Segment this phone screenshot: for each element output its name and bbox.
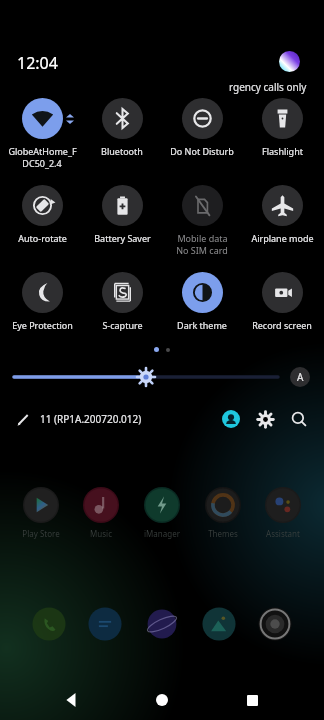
staticText: Assistant	[266, 528, 300, 539]
button[interactable]: Music	[73, 487, 129, 539]
staticText: iManager	[144, 528, 180, 539]
button[interactable]: Back	[54, 682, 90, 718]
button[interactable]: Do Not Disturb	[164, 96, 240, 159]
staticText: 11 (RP1A.200720.012)	[40, 412, 142, 426]
staticText: 12:04	[17, 52, 58, 74]
staticText: GlobeAtHome_F	[8, 145, 77, 157]
button[interactable]: Themes	[195, 487, 251, 539]
button[interactable]: Auto-rotate	[4, 183, 80, 246]
button[interactable]: Eye Protection	[4, 270, 80, 333]
button[interactable]: iManager	[134, 487, 190, 539]
staticText: Dark theme	[177, 319, 227, 331]
staticText: No SIM card	[176, 244, 228, 256]
button[interactable]: Flashlight	[244, 96, 320, 159]
button[interactable]: S-capture	[84, 270, 160, 333]
button[interactable]: Play Store	[13, 487, 69, 539]
staticText: Mobile data	[177, 232, 228, 244]
staticText: Flashlight	[262, 145, 303, 157]
button[interactable]: Brightness	[14, 364, 278, 390]
staticText: S-capture	[102, 319, 143, 331]
staticText: DC50_2.4	[22, 157, 62, 169]
button[interactable]: Dark theme	[164, 270, 240, 333]
staticText: Do Not Disturb	[170, 145, 234, 157]
staticText: Themes	[208, 528, 238, 539]
button[interactable]: GlobeAtHome_F	[4, 96, 80, 171]
staticText: Airplane mode	[251, 232, 314, 244]
button[interactable]: Camera	[257, 606, 293, 642]
button[interactable]: Recents	[234, 682, 270, 718]
staticText: Bluetooth	[101, 145, 143, 157]
button[interactable]: Phone	[31, 606, 67, 642]
button[interactable]: Auto brightness	[290, 367, 310, 387]
button[interactable]: Edit	[12, 408, 34, 430]
staticText: Auto-rotate	[18, 232, 67, 244]
staticText: Battery Saver	[94, 232, 151, 244]
button[interactable]: Settings	[252, 406, 278, 432]
staticText: Music	[90, 528, 112, 539]
button[interactable]: Gallery	[201, 606, 237, 642]
staticText: Play Store	[22, 528, 60, 539]
staticText: Eye Protection	[12, 319, 73, 331]
button[interactable]: Mobile data	[164, 183, 240, 258]
button[interactable]: Record screen	[244, 270, 320, 333]
button[interactable]: Home	[144, 682, 180, 718]
button[interactable]: Bluetooth	[84, 96, 160, 159]
button[interactable]: Battery Saver	[84, 183, 160, 246]
staticText: rgency calls only	[229, 80, 307, 94]
button[interactable]: Search	[286, 406, 312, 432]
button[interactable]: User	[218, 406, 244, 432]
button[interactable]: Messages	[87, 606, 123, 642]
button[interactable]: Airplane mode	[244, 183, 320, 246]
button[interactable]: Assistant	[255, 487, 311, 539]
other: Status icon	[279, 51, 300, 72]
staticText: A	[297, 370, 304, 384]
button[interactable]: Browser	[144, 606, 180, 642]
staticText: Record screen	[252, 319, 312, 331]
